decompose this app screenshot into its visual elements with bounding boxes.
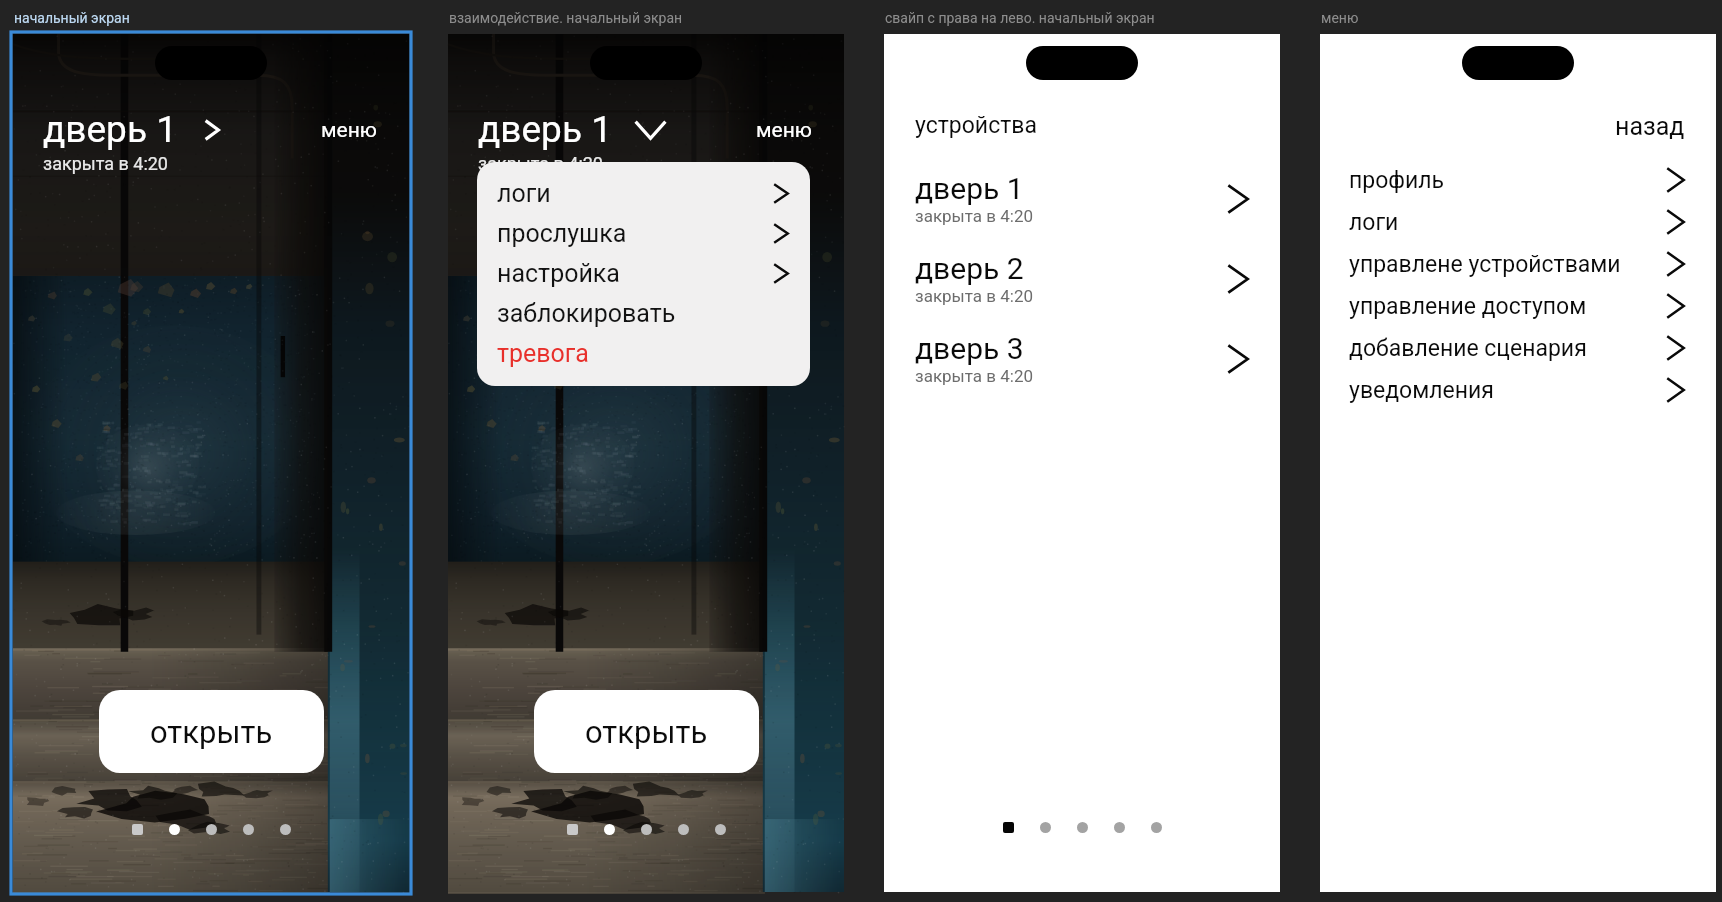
button[interactable]: добавление сценария [1349,327,1685,369]
staticText: настройка [497,259,620,288]
button[interactable]: управлене устройствами [1349,243,1685,285]
button[interactable]: Home page [132,824,143,835]
staticText: закрыта в 4:20 [915,286,1034,306]
button[interactable]: Page 4 [243,824,254,835]
staticText: меню [1321,10,1359,26]
staticText: назад [1615,112,1685,141]
button[interactable]: Home page [567,824,578,835]
button[interactable]: Page 3 [1077,822,1088,833]
button[interactable]: дверь 2 [915,251,1249,306]
button[interactable]: открыть [534,690,759,773]
staticText: тревога [497,339,589,368]
staticText: управлене устройствами [1349,251,1621,278]
staticText: добавление сценария [1349,335,1587,362]
staticText: закрыта в 4:20 [43,153,168,174]
staticText: управление доступом [1349,293,1587,320]
button[interactable]: управление доступом [1349,285,1685,327]
button[interactable]: Page 5 [715,824,726,835]
button[interactable]: уведомления [1349,369,1685,411]
button[interactable]: логи [477,173,810,213]
button[interactable]: настройка [477,253,810,293]
button[interactable]: Page 4 [1114,822,1125,833]
button[interactable]: Page 3 [641,824,652,835]
button[interactable]: заблокировать [477,293,810,333]
button[interactable]: Page 2 [604,824,615,835]
button[interactable]: дверь 1 [43,108,220,151]
staticText: закрыта в 4:20 [478,153,603,174]
staticText: меню [321,118,377,143]
staticText: логи [1349,209,1399,236]
staticText: открыть [150,714,273,750]
button[interactable]: назад [1615,112,1685,141]
staticText: меню [756,118,812,143]
button[interactable]: прослушка [477,213,810,253]
staticText: логи [497,179,551,208]
button[interactable]: логи [1349,201,1685,243]
button[interactable]: профиль [1349,159,1685,201]
staticText: взаимодействие. начальный экран [449,10,683,26]
button[interactable]: Home page [1003,822,1014,833]
button[interactable]: Page 5 [280,824,291,835]
staticText: дверь 1 [43,108,177,151]
staticText: уведомления [1349,377,1494,404]
staticText: дверь 1 [478,108,612,151]
staticText: заблокировать [497,299,676,328]
staticText: начальный экран [14,10,130,26]
staticText: дверь 2 [915,251,1024,286]
staticText: дверь 3 [915,331,1024,366]
button[interactable]: дверь 1 [915,171,1249,226]
staticText: дверь 1 [915,171,1024,206]
button[interactable]: меню [321,108,377,143]
button[interactable]: дверь 3 [915,331,1249,386]
staticText: открыть [585,714,708,750]
staticText: прослушка [497,219,627,248]
button[interactable]: Page 4 [678,824,689,835]
button[interactable]: Page 2 [1040,822,1051,833]
button[interactable]: дверь 1 [478,108,667,151]
button[interactable]: Page 5 [1151,822,1162,833]
button[interactable]: тревога [477,333,810,373]
button[interactable]: Page 2 [169,824,180,835]
staticText: устройства [915,112,1037,139]
staticText: свайп с права на лево. начальный экран [885,10,1155,26]
staticText: закрыта в 4:20 [915,366,1034,386]
button[interactable]: Page 3 [206,824,217,835]
staticText: закрыта в 4:20 [915,206,1034,226]
button[interactable]: меню [756,108,812,143]
button[interactable]: открыть [99,690,324,773]
staticText: профиль [1349,167,1445,194]
